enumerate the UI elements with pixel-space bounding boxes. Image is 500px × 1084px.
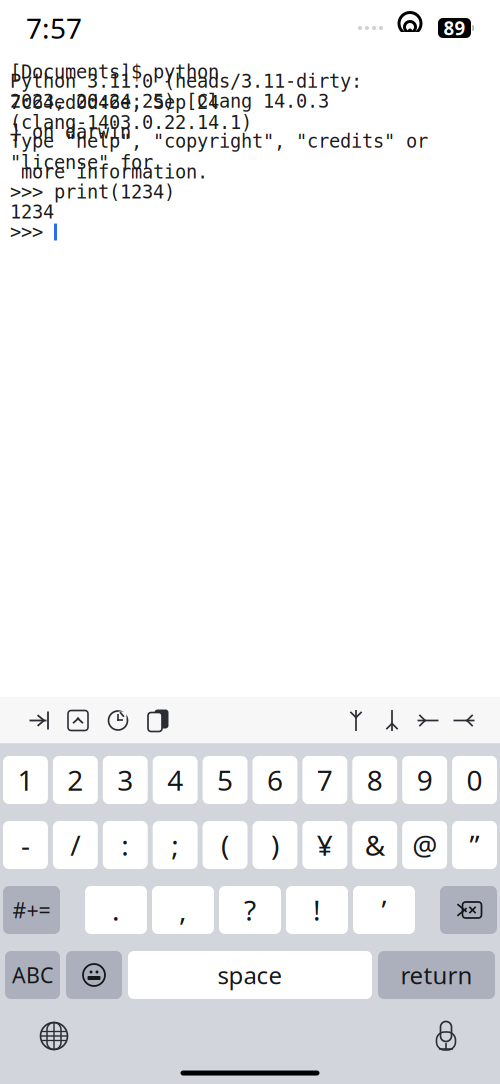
staticText: 5	[217, 761, 233, 799]
button[interactable]: History	[98, 700, 138, 740]
staticText: [Documents]$ python	[10, 61, 219, 83]
button[interactable]: -	[3, 821, 48, 869]
button[interactable]: (	[203, 821, 247, 869]
button[interactable]: ABC	[5, 951, 60, 999]
button[interactable]: Left	[410, 700, 446, 740]
staticText: 1	[17, 761, 33, 799]
staticText: 0	[467, 761, 483, 799]
button[interactable]: Paste	[138, 700, 178, 740]
button[interactable]: 1	[3, 756, 48, 804]
staticText: :	[121, 826, 129, 864]
staticText: 4	[167, 761, 183, 799]
button[interactable]: Delete	[440, 886, 497, 934]
button[interactable]: #+=	[3, 886, 60, 934]
button[interactable]: ?	[219, 886, 281, 934]
button[interactable]: 2	[53, 756, 98, 804]
staticText: ’	[381, 891, 386, 929]
button[interactable]: space	[128, 951, 372, 999]
staticText: @	[412, 826, 437, 864]
staticText: 2	[67, 761, 83, 799]
button[interactable]: 4	[153, 756, 198, 804]
button[interactable]: 6	[252, 756, 297, 804]
button[interactable]: 8	[352, 756, 397, 804]
button[interactable]: .	[85, 886, 147, 934]
staticText: /	[70, 826, 80, 864]
staticText: 2023, 20:24:25) [Clang 14.0.3 (clang-140…	[10, 91, 329, 133]
button[interactable]: 9	[402, 756, 447, 804]
button[interactable]: 5	[203, 756, 247, 804]
button[interactable]: 0	[452, 756, 497, 804]
button[interactable]: Dictate	[424, 1016, 468, 1056]
staticText: .	[112, 891, 120, 929]
button[interactable]: Next keyboard	[32, 1016, 76, 1056]
button[interactable]: return	[378, 951, 495, 999]
button[interactable]: Up	[338, 700, 374, 740]
staticText: Python 3.11.0 (heads/3.11-dirty:7c64ed0d…	[10, 71, 362, 113]
button[interactable]: )	[252, 821, 297, 869]
button[interactable]: 7	[302, 756, 347, 804]
staticText: space	[217, 959, 282, 991]
staticText: #+=	[12, 896, 50, 924]
staticText: -	[21, 826, 30, 864]
staticText: ”	[470, 826, 480, 864]
staticText: ;	[171, 826, 179, 864]
staticText: 1234	[10, 201, 54, 223]
staticText: 6	[267, 761, 283, 799]
staticText: 7:57	[26, 9, 82, 47]
staticText: ] on darwin	[10, 121, 131, 143]
staticText: ?	[244, 891, 256, 929]
staticText: 89	[443, 16, 465, 40]
staticText: )	[271, 826, 279, 864]
staticText: !	[313, 891, 321, 929]
staticText: ABC	[12, 961, 53, 989]
staticText: &	[365, 826, 385, 864]
staticText: more information.	[10, 161, 208, 183]
staticText: 9	[417, 761, 433, 799]
button[interactable]: :	[103, 821, 148, 869]
staticText: return	[400, 959, 472, 991]
button[interactable]: @	[402, 821, 447, 869]
staticText: ,	[179, 891, 187, 929]
staticText: >>> print(1234)	[10, 181, 175, 203]
staticText: ¥	[317, 826, 333, 864]
button[interactable]: 3	[103, 756, 148, 804]
button[interactable]: &	[352, 821, 397, 869]
button[interactable]: Emoji	[66, 951, 122, 999]
staticText: 3	[117, 761, 133, 799]
button[interactable]: /	[53, 821, 98, 869]
button[interactable]: ¥	[302, 821, 347, 869]
button[interactable]: Tab	[18, 700, 58, 740]
button[interactable]: Down	[374, 700, 410, 740]
button[interactable]: ,	[152, 886, 214, 934]
button[interactable]: ;	[153, 821, 198, 869]
staticText: 7	[317, 761, 333, 799]
staticText: Type "help", "copyright", "credits" or "…	[10, 131, 428, 173]
button[interactable]: !	[286, 886, 348, 934]
button[interactable]: Right	[446, 700, 482, 740]
button[interactable]: ”	[452, 821, 497, 869]
staticText: (	[221, 826, 229, 864]
button[interactable]: ’	[353, 886, 415, 934]
staticText: 8	[367, 761, 383, 799]
staticText: >>>	[10, 221, 54, 243]
button[interactable]: Control	[58, 700, 98, 740]
